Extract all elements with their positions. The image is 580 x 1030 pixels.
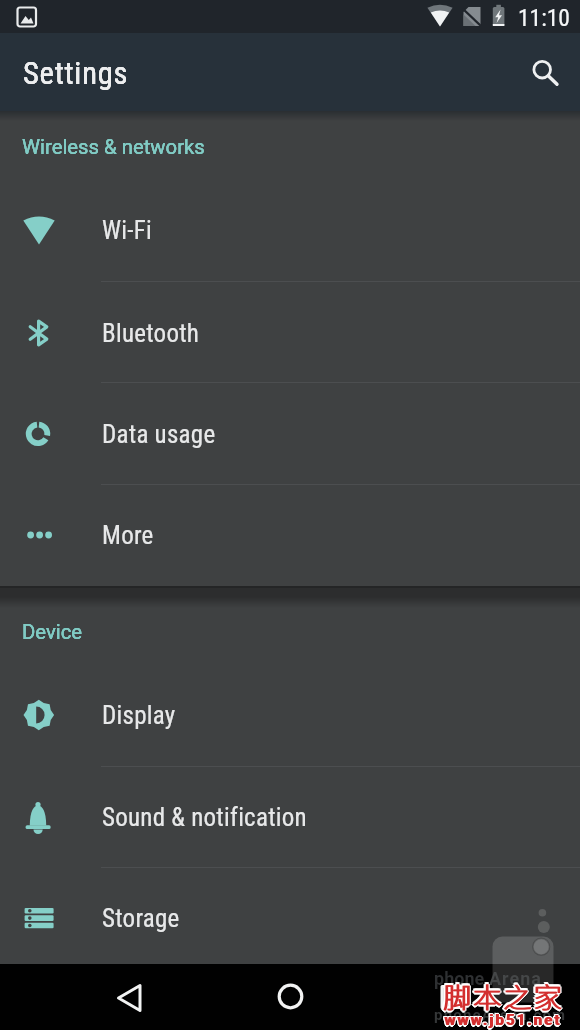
staticText: www.jb51.net — [444, 1011, 562, 1029]
staticText: Device — [22, 620, 83, 644]
staticText: Device — [22, 620, 83, 644]
staticText: Display — [102, 701, 176, 730]
staticText: 11:10 — [518, 4, 570, 32]
staticText: Data usage — [102, 420, 216, 449]
button[interactable] — [101, 969, 157, 1025]
button[interactable]: Display — [0, 664, 580, 766]
staticText: www.jb51.net — [445, 1012, 563, 1030]
staticText: 脚本之家 — [442, 974, 563, 1015]
button[interactable] — [520, 48, 564, 92]
staticText: 脚本之家 — [444, 974, 565, 1015]
staticText: phone — [434, 968, 485, 989]
staticText: www.jb51.net — [443, 1010, 561, 1028]
staticText: Wi-Fi — [102, 216, 152, 245]
staticText: Settings — [23, 56, 129, 92]
button[interactable]: Wi-Fi — [0, 179, 580, 281]
staticText: More — [102, 521, 154, 550]
button[interactable]: Sound & notification — [0, 766, 580, 868]
staticText: www.jb51.net — [443, 1012, 561, 1030]
staticText: www.jb51.net — [443, 1011, 561, 1029]
staticText: Settings — [23, 56, 129, 92]
staticText: 脚本之家 — [442, 977, 563, 1018]
button[interactable]: Data usage — [0, 383, 580, 485]
button[interactable]: More — [0, 484, 580, 586]
staticText: 脚本之家 — [443, 974, 564, 1015]
staticText: Wireless & networks — [22, 135, 205, 159]
staticText: 脚本之家 — [445, 976, 566, 1017]
staticText: www.jb51.net — [444, 1010, 562, 1028]
staticText: 脚本之家 — [444, 976, 565, 1017]
button[interactable] — [262, 969, 318, 1025]
staticText: www.jb51.net — [446, 1011, 564, 1029]
staticText: 脚本之家 — [443, 976, 564, 1017]
staticText: Bluetooth — [102, 319, 200, 348]
button[interactable] — [424, 969, 480, 1025]
staticText: 脚本之家 — [443, 978, 564, 1019]
staticText: Arena — [489, 968, 542, 989]
button[interactable]: Bluetooth — [0, 282, 580, 384]
button[interactable]: Storage — [0, 867, 580, 969]
staticText: www.jb51.net — [445, 1011, 563, 1029]
staticText: www.jb51.net — [445, 1010, 563, 1028]
staticText: Storage — [102, 904, 180, 933]
staticText: 脚本之家 — [444, 977, 565, 1018]
staticText: Sound & notification — [102, 803, 307, 832]
staticText: phoneArena.com — [434, 1006, 567, 1024]
staticText: 脚本之家 — [441, 976, 562, 1017]
staticText: www.jb51.net — [444, 1013, 562, 1030]
staticText: Wireless & networks — [22, 135, 205, 159]
